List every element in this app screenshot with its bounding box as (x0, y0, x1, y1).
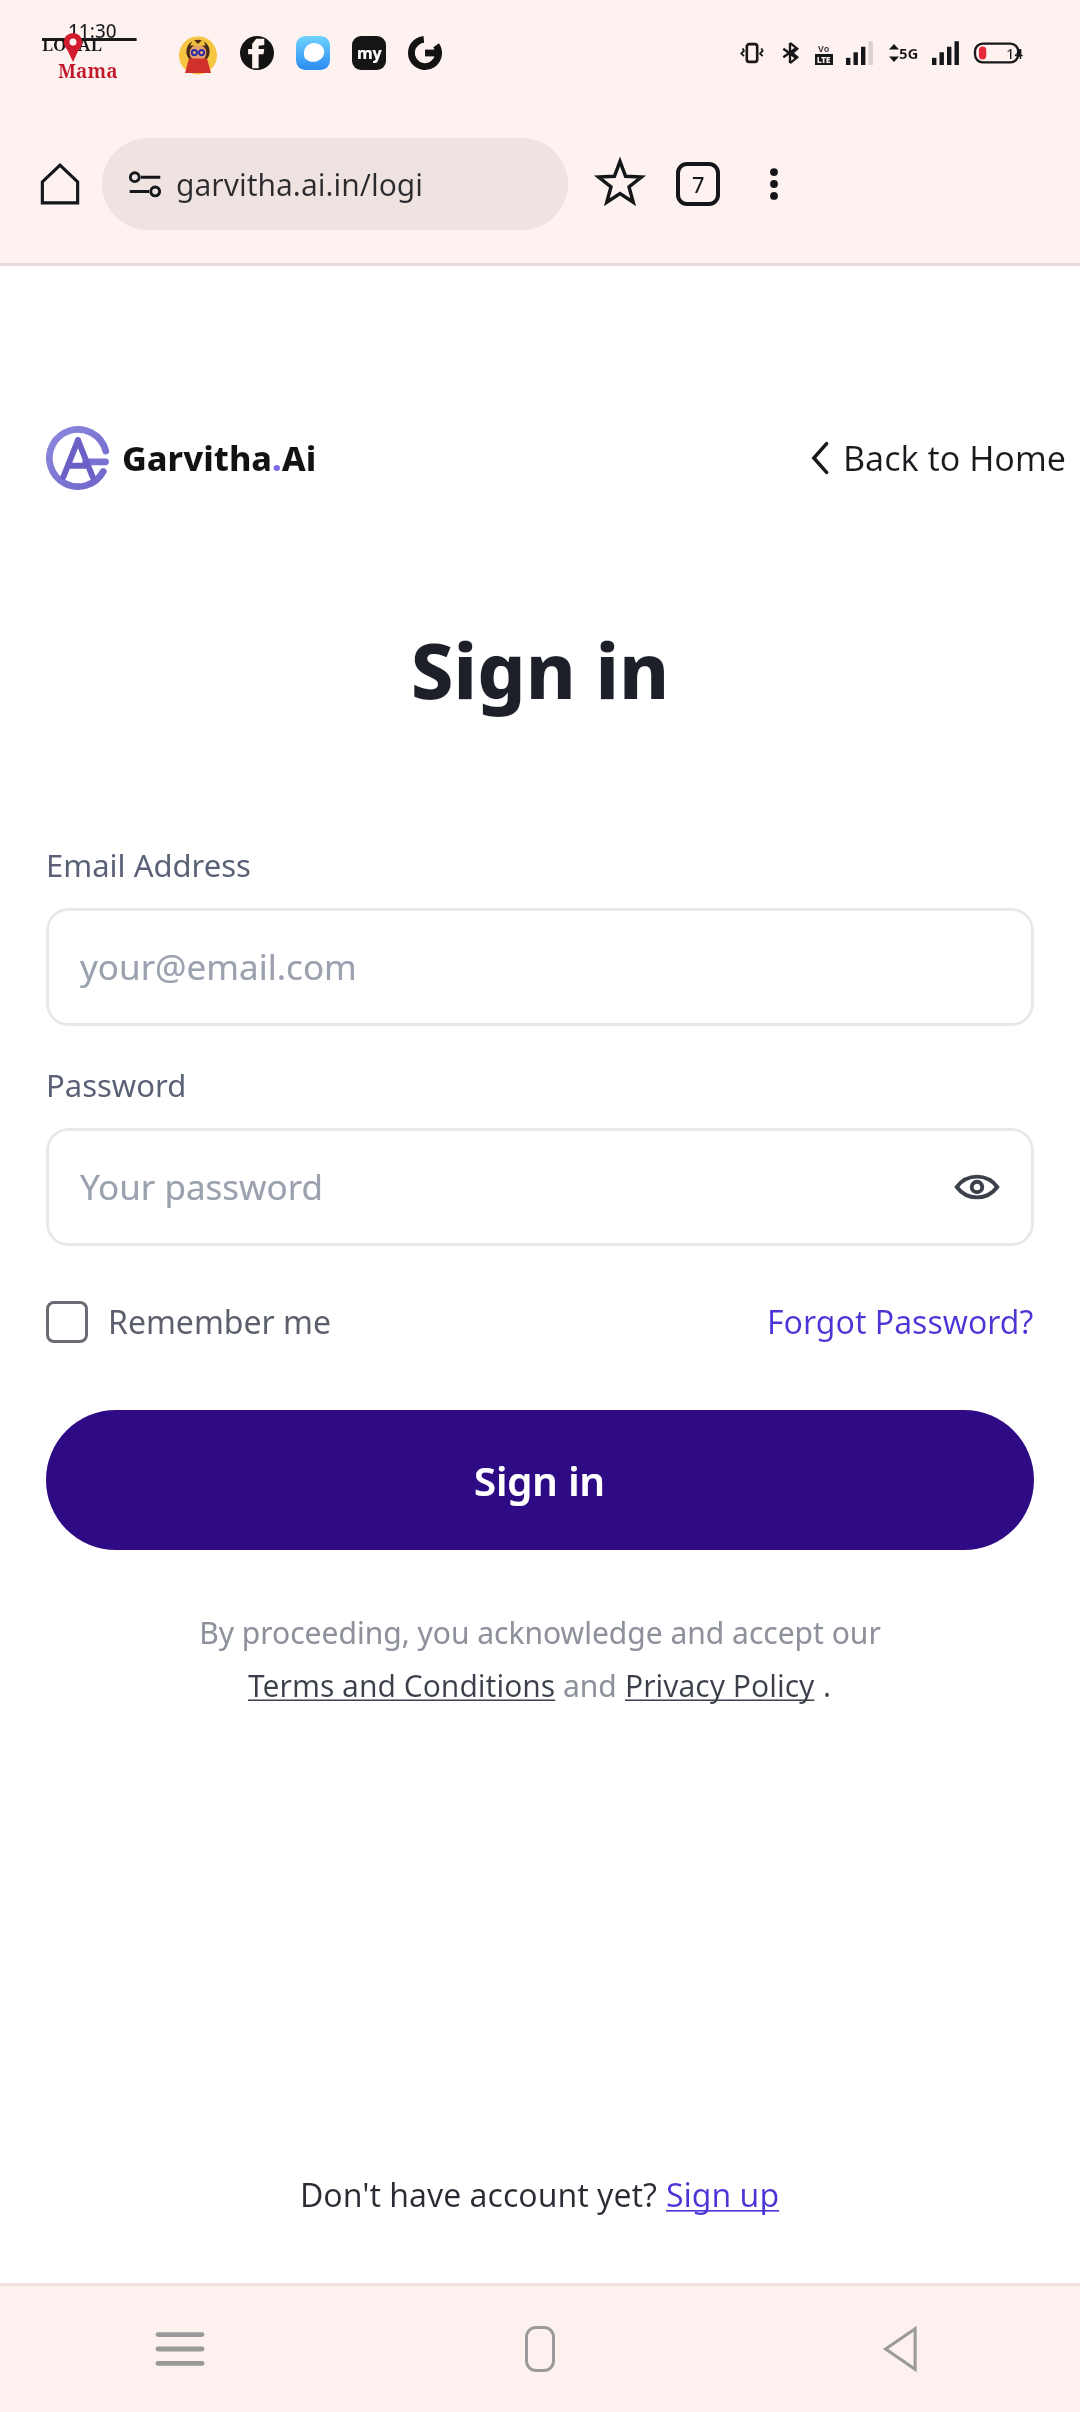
button[interactable]: More options (738, 148, 810, 220)
staticText: LTE (817, 54, 831, 65)
staticText: Privacy Policy (625, 1665, 823, 1706)
staticText: By proceeding, you acknowledge and accep… (0, 1612, 1080, 1653)
staticText: 5G (899, 43, 919, 63)
staticText: Remember me (108, 1300, 332, 1344)
button[interactable]: Bookmark (584, 148, 656, 220)
button[interactable]: Privacy Policy (625, 1665, 823, 1706)
staticText: Forgot Password? (767, 1300, 1034, 1344)
staticText: Sign in (0, 618, 1080, 722)
staticText: Sign up (666, 2173, 780, 2217)
staticText: Don't have account yet? (300, 2173, 666, 2217)
button[interactable]: Terms and Conditions (248, 1665, 563, 1706)
button[interactable]: Tabs, 7 open (662, 148, 734, 220)
staticText: . (823, 1665, 832, 1706)
button[interactable]: Show password (946, 1156, 1008, 1218)
staticText: your@email.com (80, 943, 357, 991)
staticText: my (357, 42, 382, 64)
button[interactable]: your@email.com (46, 908, 1034, 1026)
staticText: Email Address (46, 844, 251, 886)
staticText: 7 (692, 169, 705, 199)
staticText: Back to Home (843, 435, 1066, 481)
button[interactable]: Sign up (666, 2173, 780, 2217)
staticText: Vo (818, 42, 830, 54)
button[interactable]: Your password (46, 1128, 1034, 1246)
staticText: garvitha.ai.in/logi (176, 164, 424, 205)
staticText: Garvitha.Ai (122, 435, 317, 481)
button[interactable]: Forgot Password? (767, 1300, 1034, 1344)
staticText: 11:30 (68, 18, 117, 44)
staticText: Mama (58, 58, 118, 84)
button[interactable]: garvitha.ai.in/logi (102, 138, 568, 230)
button[interactable]: Back to Home (809, 435, 1070, 481)
staticText: Your password (80, 1163, 324, 1211)
staticText: and (563, 1665, 625, 1706)
staticText: Sign in (474, 1453, 606, 1507)
button[interactable]: Garvitha.Ai (46, 426, 317, 490)
button[interactable]: Sign in (46, 1410, 1034, 1550)
button[interactable]: Remember me (46, 1300, 332, 1344)
staticText: Password (46, 1064, 187, 1106)
staticText: Terms and Conditions (248, 1665, 563, 1706)
button[interactable]: Back (720, 2286, 1080, 2412)
button[interactable]: Home (28, 152, 92, 216)
staticText: 14 (1006, 43, 1024, 63)
staticText: LOCAL (42, 33, 102, 56)
button[interactable]: Home (360, 2286, 720, 2412)
button[interactable]: Recent apps (0, 2286, 360, 2412)
